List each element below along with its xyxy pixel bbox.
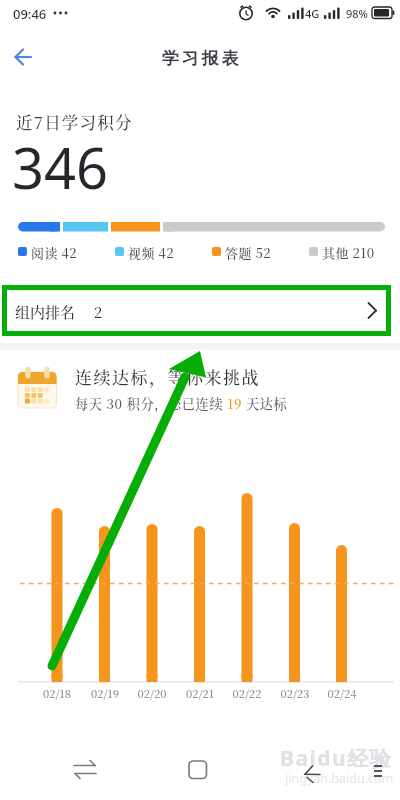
staticText: jingyan.baidu.com [285, 770, 394, 787]
staticText: 02/24 [327, 685, 357, 701]
staticText: 4G [305, 6, 320, 21]
staticText: 阅读 42 [31, 243, 78, 262]
staticText: 连续达标，等你来挑战 [75, 364, 260, 388]
button[interactable] [55, 745, 115, 795]
staticText: 02/22 [232, 685, 262, 701]
staticText: 346 [12, 129, 109, 205]
staticText: 02/23 [280, 685, 310, 701]
staticText: 02/21 [186, 685, 214, 701]
button[interactable] [167, 745, 227, 795]
staticText: 近7日学习积分 [16, 110, 133, 134]
staticText: 09:46 [13, 5, 47, 23]
button[interactable] [10, 358, 390, 414]
staticText: 组内排名 2 [15, 301, 103, 323]
staticText: 视频 42 [128, 243, 175, 262]
button[interactable] [7, 290, 386, 331]
staticText: 学习报表 [160, 48, 240, 69]
staticText: 02/20 [137, 685, 167, 701]
staticText: 02/19 [91, 685, 119, 701]
staticText: 98% [346, 6, 368, 21]
staticText: Baidu经验 [280, 744, 393, 773]
button[interactable] [283, 745, 343, 795]
staticText: 02/18 [43, 685, 71, 701]
staticText: 答题 52 [225, 243, 272, 262]
button[interactable] [4, 40, 48, 76]
staticText: 其他 210 [322, 243, 375, 262]
staticText: 每天 30 积分，您已连续 19 天达标 [75, 394, 288, 413]
